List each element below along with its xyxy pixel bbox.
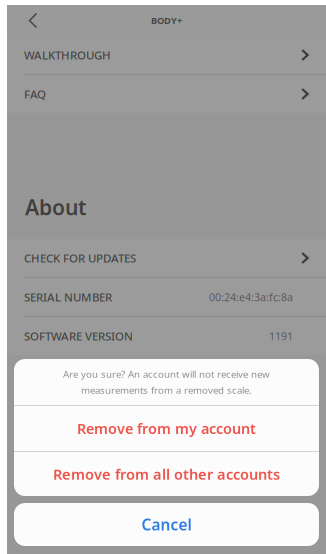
staticText: BODY+ <box>151 14 182 27</box>
button[interactable]: CHECK FOR UPDATES <box>7 239 326 277</box>
staticText: Cancel <box>141 514 191 535</box>
staticText: About <box>25 193 87 221</box>
staticText: CHECK FOR UPDATES <box>24 250 136 266</box>
staticText: 1191 <box>269 329 293 343</box>
staticText: Remove from all other accounts <box>53 464 280 484</box>
staticText: FAQ <box>24 86 46 102</box>
button[interactable]: Cancel <box>14 503 319 546</box>
staticText: WALKTHROUGH <box>24 47 111 63</box>
staticText: measurements from a removed scale. <box>81 383 252 397</box>
button[interactable]: Remove from my account <box>14 406 319 451</box>
button[interactable]: FAQ <box>7 75 326 113</box>
staticText: SOFTWARE VERSION <box>24 328 133 344</box>
button[interactable]: Back <box>21 8 45 32</box>
staticText: Are you sure? An account will not receiv… <box>63 367 270 380</box>
staticText: Remove from my account <box>77 419 256 438</box>
staticText: 00:24:e4:3a:fc:8a <box>209 290 293 304</box>
button[interactable]: Remove from all other accounts <box>14 452 319 496</box>
staticText: SERIAL NUMBER <box>24 289 112 305</box>
button[interactable]: WALKTHROUGH <box>7 36 326 74</box>
